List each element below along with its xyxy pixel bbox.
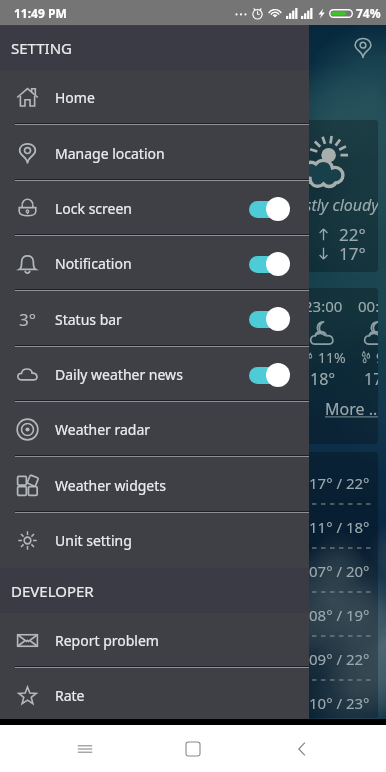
button[interactable]: Home [169,725,217,772]
button[interactable]: Weather widgets [0,457,309,513]
button[interactable]: More ... [325,398,378,420]
other: Location [352,37,374,59]
button[interactable]: Report problem [0,613,309,668]
staticText: 18° [310,368,336,390]
button[interactable]: 07° / 20° [138,549,378,593]
staticText: 11% [318,348,346,367]
staticText: SETTING [11,38,72,58]
button[interactable]: 17° / 22° [138,461,378,505]
button[interactable]: Rate [0,668,309,723]
staticText: Home [55,88,95,107]
button[interactable]: 10° / 23° [138,681,378,725]
staticText: Notification [55,254,132,273]
button[interactable]: 09° / 22° [138,637,378,681]
staticText: 11° / 18° [309,517,370,537]
staticText: 07° / 20° [309,561,370,581]
button[interactable]: Recent apps [61,725,109,772]
button[interactable]: Home [0,70,309,125]
staticText: 17° [364,368,378,390]
staticText: More ... [325,398,378,420]
button[interactable]: 08° / 19° [138,593,378,637]
button[interactable]: Weather radar [0,402,309,457]
staticText: 9% [376,348,378,367]
staticText: Status bar [55,310,122,329]
button[interactable]: Notification [0,236,309,291]
button[interactable]: Manage location [0,125,309,181]
staticText: Lock screen [55,199,133,218]
staticText: Rate [55,686,85,705]
staticText: 17° [339,242,366,265]
staticText: 09° / 22° [309,649,370,669]
staticText: 23:00 [304,296,343,316]
staticText: Weather radar [55,420,151,439]
staticText: Report problem [55,631,159,650]
button[interactable]: 3° [0,291,309,347]
staticText: 17° / 22° [309,473,370,493]
staticText: DEVELOPER [11,581,94,601]
button[interactable]: Lock screen [0,181,309,236]
staticText: 08° / 19° [309,605,370,625]
button[interactable]: 11° / 18° [138,505,378,549]
staticText: 22° [339,223,366,246]
staticText: 10° / 23° [309,693,370,713]
staticText: 00:00 [358,296,378,316]
staticText: 11:49 PM [14,5,67,21]
staticText: 3° [19,308,36,331]
staticText: Daily weather news [55,365,183,384]
staticText: Unit setting [55,531,132,550]
staticText: Weather widgets [55,476,167,495]
staticText: Mostly cloudy [282,194,378,216]
button[interactable]: Unit setting [0,513,309,568]
button[interactable]: Back [278,725,326,772]
staticText: 74% [356,5,381,21]
button[interactable]: Daily weather news [0,347,309,402]
staticText: Manage location [55,144,165,163]
